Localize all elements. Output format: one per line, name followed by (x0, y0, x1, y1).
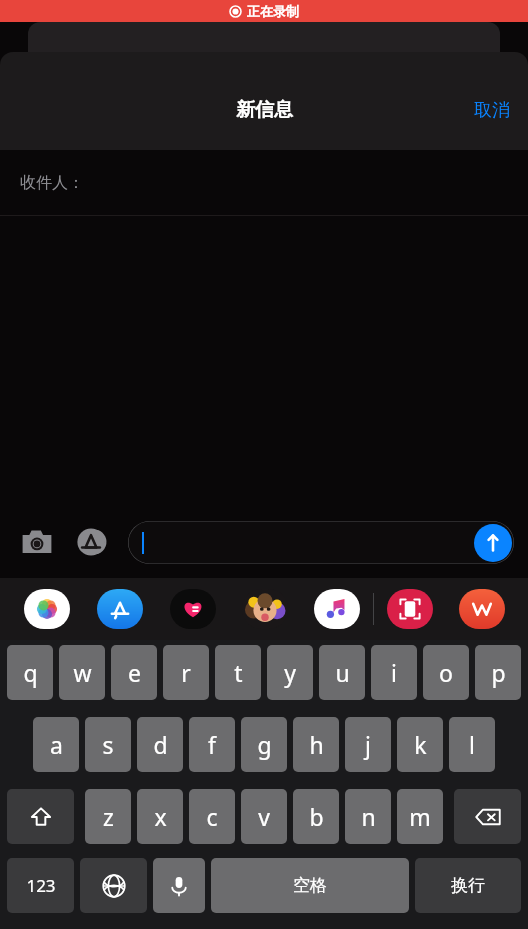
staticText: h (309, 729, 324, 760)
staticText: n (361, 801, 376, 832)
staticText: 取消 (474, 99, 510, 122)
staticText: 正在录制 (247, 3, 299, 19)
button[interactable]: k (397, 717, 443, 772)
button[interactable]: e (111, 645, 157, 700)
staticText: e (128, 657, 141, 688)
button[interactable]: c (189, 789, 235, 844)
button[interactable]: l (449, 717, 495, 772)
button[interactable]: Delete (454, 789, 521, 844)
staticText: p (491, 657, 506, 688)
button[interactable]: 换行 (415, 858, 521, 913)
button[interactable]: p (475, 645, 521, 700)
staticText: u (335, 657, 350, 688)
button[interactable]: App Store (68, 519, 114, 565)
staticText: o (439, 657, 453, 688)
staticText: l (469, 729, 475, 760)
staticText: 收件人： (20, 173, 84, 193)
button[interactable]: v (241, 789, 287, 844)
button[interactable]: App (301, 585, 373, 633)
button[interactable]: h (293, 717, 339, 772)
button[interactable]: Send (474, 524, 512, 562)
staticText: w (73, 657, 92, 688)
button[interactable]: App (374, 585, 446, 633)
staticText: k (414, 729, 427, 760)
button[interactable]: Recording status (0, 0, 528, 22)
staticText: 换行 (451, 875, 485, 896)
staticText: s (102, 729, 114, 760)
staticText: 新信息 (236, 98, 293, 122)
staticText: z (103, 801, 114, 832)
button[interactable]: m (397, 789, 443, 844)
button[interactable]: 123 (7, 858, 74, 913)
staticText: j (365, 729, 371, 760)
button[interactable]: q (7, 645, 53, 700)
staticText: r (181, 657, 191, 688)
button[interactable]: 取消 (462, 93, 522, 128)
button[interactable]: Switch keyboard (80, 858, 147, 913)
button[interactable]: f (189, 717, 235, 772)
button[interactable]: d (137, 717, 183, 772)
staticText: 123 (26, 874, 56, 897)
staticText: a (50, 729, 63, 760)
button[interactable]: i (371, 645, 417, 700)
button[interactable]: t (215, 645, 261, 700)
staticText: m (409, 801, 431, 832)
button[interactable]: 空格 (211, 858, 409, 913)
staticText: f (208, 729, 216, 760)
button[interactable]: Camera (14, 519, 60, 565)
staticText: i (391, 657, 397, 688)
button[interactable]: o (423, 645, 469, 700)
staticText: 空格 (293, 875, 327, 896)
staticText: q (23, 657, 38, 688)
button[interactable]: n (345, 789, 391, 844)
button[interactable]: a (33, 717, 79, 772)
staticText: y (284, 657, 296, 688)
staticText: c (206, 801, 218, 832)
staticText: g (257, 729, 272, 760)
button[interactable]: Send (128, 521, 514, 564)
button[interactable]: App (156, 585, 229, 633)
button[interactable]: x (137, 789, 183, 844)
staticText: d (153, 729, 168, 760)
button[interactable]: App (10, 585, 83, 633)
button[interactable]: g (241, 717, 287, 772)
staticText: x (154, 801, 167, 832)
button[interactable]: s (85, 717, 131, 772)
button[interactable]: z (85, 789, 131, 844)
staticText: b (309, 801, 324, 832)
button[interactable]: Dictation (153, 858, 205, 913)
button[interactable]: App (229, 585, 301, 633)
button[interactable]: b (293, 789, 339, 844)
button[interactable]: App (446, 585, 518, 633)
button[interactable]: 收件人： (0, 150, 528, 215)
button[interactable]: r (163, 645, 209, 700)
button[interactable]: w (59, 645, 105, 700)
staticText: t (234, 657, 243, 688)
button[interactable]: Shift (7, 789, 74, 844)
button[interactable]: y (267, 645, 313, 700)
button[interactable]: App (83, 585, 156, 633)
button[interactable]: u (319, 645, 365, 700)
button[interactable]: j (345, 717, 391, 772)
staticText: v (258, 801, 270, 832)
